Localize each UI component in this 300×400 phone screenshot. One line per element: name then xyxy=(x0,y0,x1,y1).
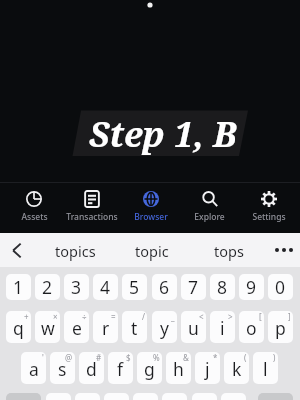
staticText: w xyxy=(41,316,55,340)
button[interactable]: 8 xyxy=(210,274,235,300)
button[interactable]: × xyxy=(35,311,60,343)
staticText: Browser xyxy=(134,211,168,223)
button[interactable]: * xyxy=(195,352,220,384)
button[interactable]: / xyxy=(122,311,147,343)
button[interactable]: m xyxy=(221,393,246,400)
staticText: ] xyxy=(288,311,291,322)
button[interactable]: = xyxy=(93,311,118,343)
button[interactable]: n xyxy=(192,393,217,400)
staticText: & xyxy=(183,352,189,363)
staticText: i xyxy=(220,316,225,340)
staticText: topic xyxy=(135,241,169,261)
button[interactable]: > xyxy=(210,311,235,343)
button[interactable]: z xyxy=(46,393,71,400)
button[interactable]: 0 xyxy=(268,274,293,300)
button[interactable]: 7 xyxy=(181,274,206,300)
button[interactable]: Explore xyxy=(180,182,239,233)
staticText: Transactions xyxy=(66,211,118,223)
button[interactable]: Backspace xyxy=(258,393,293,400)
button[interactable]: Assets xyxy=(5,182,63,233)
staticText: 5 xyxy=(129,275,140,299)
staticText: 7 xyxy=(188,275,199,299)
button[interactable]: topics xyxy=(37,233,113,267)
button[interactable]: # xyxy=(79,352,104,384)
staticText: # xyxy=(96,352,102,363)
button[interactable]: < xyxy=(181,311,206,343)
button[interactable]: x xyxy=(75,393,100,400)
button[interactable]: + xyxy=(6,311,31,343)
staticText: 9 xyxy=(246,275,257,299)
button[interactable]: v xyxy=(133,393,158,400)
staticText: h xyxy=(173,357,184,381)
button[interactable]: b xyxy=(162,393,187,400)
button[interactable]: ] xyxy=(268,311,293,343)
staticText: 6 xyxy=(159,275,170,299)
button[interactable]: 6 xyxy=(152,274,177,300)
button[interactable]: Browser xyxy=(121,182,180,233)
staticText: 2 xyxy=(42,275,53,299)
staticText: Step 1, B xyxy=(89,110,237,158)
staticText: u xyxy=(188,316,199,340)
staticText: p xyxy=(275,316,286,340)
button[interactable]: $ xyxy=(108,352,133,384)
button[interactable]: Shift xyxy=(6,393,41,400)
button[interactable]: Settings xyxy=(239,182,298,233)
button[interactable]: Transactions xyxy=(63,182,121,233)
button[interactable]: ) xyxy=(253,352,278,384)
button[interactable]: 5 xyxy=(122,274,147,300)
staticText: ' xyxy=(42,352,44,363)
staticText: 1 xyxy=(13,275,24,299)
staticText: topics xyxy=(55,241,96,261)
button[interactable]: % xyxy=(137,352,162,384)
staticText: Assets xyxy=(21,211,48,223)
button[interactable]: More options xyxy=(267,233,300,267)
button[interactable]: 1 xyxy=(6,274,31,300)
button[interactable]: @ xyxy=(50,352,75,384)
button[interactable]: 2 xyxy=(35,274,60,300)
staticText: s xyxy=(58,357,67,381)
staticText: 3 xyxy=(71,275,82,299)
staticText: _ xyxy=(171,311,175,322)
staticText: @ xyxy=(65,352,73,363)
button[interactable]: topic xyxy=(113,233,190,267)
staticText: o xyxy=(246,316,257,340)
button[interactable]: ( xyxy=(224,352,249,384)
staticText: = xyxy=(111,311,116,322)
button[interactable]: _ xyxy=(152,311,177,343)
button[interactable]: tops xyxy=(190,233,267,267)
staticText: l xyxy=(263,357,268,381)
button[interactable]: & xyxy=(166,352,191,384)
staticText: k xyxy=(232,357,242,381)
staticText: / xyxy=(142,311,145,322)
button[interactable]: [ xyxy=(239,311,264,343)
staticText: > xyxy=(228,311,233,322)
staticText: * xyxy=(213,352,218,363)
staticText: < xyxy=(199,311,204,322)
staticText: ÷ xyxy=(82,311,87,322)
staticText: 0 xyxy=(275,275,286,299)
staticText: j xyxy=(205,357,210,381)
staticText: r xyxy=(102,316,110,340)
staticText: f xyxy=(117,357,124,381)
button[interactable]: ÷ xyxy=(64,311,89,343)
button[interactable]: ' xyxy=(21,352,46,384)
button[interactable]: 3 xyxy=(64,274,89,300)
staticText: [ xyxy=(259,311,262,322)
staticText: y xyxy=(160,316,169,340)
staticText: 8 xyxy=(217,275,228,299)
button[interactable]: c xyxy=(104,393,129,400)
staticText: g xyxy=(144,357,155,381)
staticText: 4 xyxy=(100,275,111,299)
staticText: d xyxy=(86,357,97,381)
button[interactable]: 9 xyxy=(239,274,264,300)
staticText: ) xyxy=(273,352,276,363)
button[interactable]: Back xyxy=(0,233,34,267)
staticText: a xyxy=(29,357,39,381)
button[interactable]: 4 xyxy=(93,274,118,300)
